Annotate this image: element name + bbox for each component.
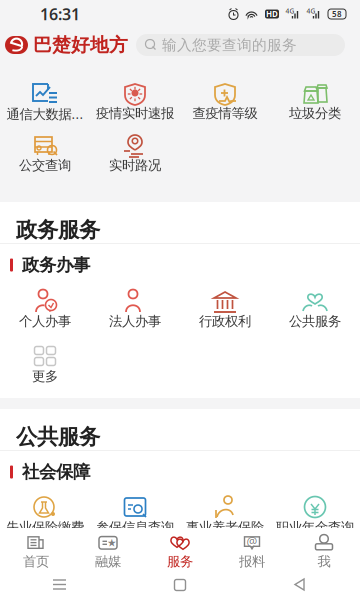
staticText: 查疫情等级	[192, 105, 257, 121]
button[interactable]: 法人办事	[90, 288, 180, 343]
staticText: 参保信息查询	[96, 519, 174, 535]
button[interactable]: 更多	[0, 343, 90, 398]
staticText: ★	[107, 537, 117, 549]
staticText: 4G	[285, 7, 294, 15]
staticText: 实时路况	[109, 157, 161, 173]
staticText: 职业年金查询	[276, 519, 354, 535]
staticText: 政务办事	[22, 254, 90, 276]
staticText: 4G	[306, 7, 315, 15]
button[interactable]: 首页	[0, 529, 72, 569]
button[interactable]: 通信大数据...	[0, 80, 90, 132]
staticText: 更多	[32, 368, 58, 384]
staticText: HD	[266, 9, 278, 19]
staticText: @	[246, 533, 257, 549]
staticText: 输入您要查询的服务	[162, 36, 297, 54]
button[interactable]: 参保信息查询	[90, 494, 180, 549]
button[interactable]: 个人办事	[0, 288, 90, 343]
button[interactable]: 服务	[144, 529, 216, 569]
button[interactable]: Recent apps	[0, 570, 120, 600]
button[interactable]: Back	[240, 570, 360, 600]
staticText: 首页	[23, 553, 49, 570]
staticText: 报料	[239, 553, 265, 570]
staticText: 巴楚好地方	[33, 33, 128, 56]
button[interactable]: 巴楚好地方	[5, 33, 128, 56]
staticText: 失业保险缴费	[6, 519, 84, 535]
button[interactable]: 公交查询	[0, 132, 90, 184]
staticText: 16:31	[40, 3, 80, 25]
button[interactable]: 职业年金查询	[270, 494, 360, 549]
staticText: 我	[317, 553, 330, 570]
staticText: 垃圾分类	[289, 105, 341, 121]
staticText: 事业养老保险	[186, 519, 264, 535]
button[interactable]: Home	[120, 570, 240, 600]
button[interactable]: 输入您要查询的服务	[136, 34, 345, 56]
button[interactable]: 失业保险缴费	[0, 494, 90, 549]
button[interactable]: 垃圾分类	[270, 80, 360, 132]
button[interactable]: 事业养老保险	[180, 494, 270, 549]
staticText: 公共服务	[289, 313, 341, 329]
staticText: 个人办事	[19, 313, 71, 329]
button[interactable]: 疫情实时速报	[90, 80, 180, 132]
button[interactable]: 查疫情等级	[180, 80, 270, 132]
button[interactable]: @	[216, 529, 288, 569]
staticText: 58	[332, 9, 342, 19]
staticText: 服务	[167, 553, 193, 570]
button[interactable]: ★	[72, 529, 144, 569]
staticText: 融媒	[95, 553, 121, 570]
staticText: 政务服务	[16, 217, 100, 243]
staticText: 公交查询	[19, 157, 71, 173]
staticText: 法人办事	[109, 313, 161, 329]
button[interactable]: 公共服务	[270, 288, 360, 343]
staticText: 疫情实时速报	[96, 105, 174, 121]
button[interactable]: 行政权利	[180, 288, 270, 343]
staticText: 通信大数据...	[6, 105, 83, 123]
button[interactable]: 我	[288, 529, 360, 569]
staticText: 社会保障	[22, 461, 90, 483]
staticText: 公共服务	[16, 424, 100, 450]
staticText: 行政权利	[199, 313, 251, 329]
button[interactable]: 实时路况	[90, 132, 180, 184]
